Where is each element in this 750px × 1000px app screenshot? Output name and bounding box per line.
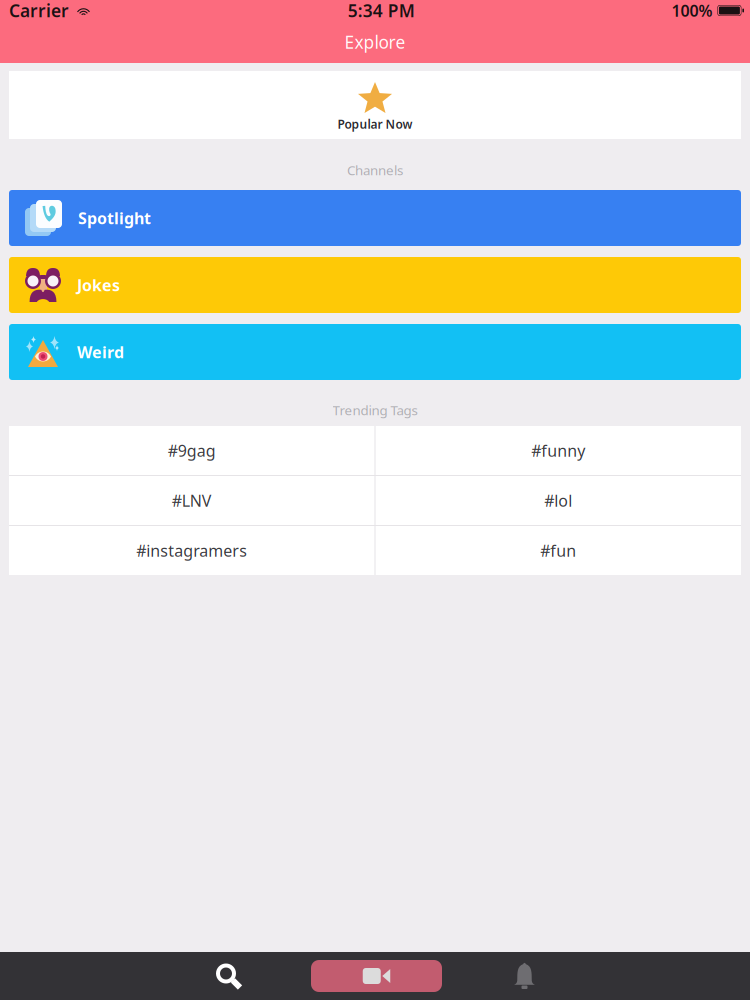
button[interactable]: Weird xyxy=(9,324,741,380)
button[interactable]: #fun xyxy=(375,526,741,575)
staticText: #fun xyxy=(540,540,576,561)
staticText: #LNV xyxy=(172,490,212,511)
staticText: Jokes xyxy=(77,274,120,296)
staticText: #lol xyxy=(544,490,572,511)
staticText: 5:34 PM xyxy=(348,0,415,22)
staticText: Weird xyxy=(77,341,124,363)
button[interactable]: Jokes xyxy=(9,257,741,313)
button[interactable]: #instagramers xyxy=(9,526,374,575)
button[interactable]: Popular Now xyxy=(9,71,741,139)
staticText: #instagramers xyxy=(136,540,247,561)
staticText: Carrier xyxy=(9,0,69,22)
staticText: 100% xyxy=(671,0,712,21)
button[interactable]: Search xyxy=(146,952,311,1000)
staticText: #9gag xyxy=(168,440,216,461)
button[interactable]: #lol xyxy=(375,476,741,525)
button[interactable]: Spotlight xyxy=(9,190,741,246)
staticText: #funny xyxy=(531,440,585,461)
button[interactable]: #LNV xyxy=(9,476,374,525)
staticText: Popular Now xyxy=(337,116,412,132)
staticText: Trending Tags xyxy=(332,401,417,419)
button[interactable]: #funny xyxy=(375,426,741,475)
staticText: Spotlight xyxy=(78,207,151,229)
button[interactable]: Record video xyxy=(311,960,442,992)
staticText: Explore xyxy=(344,30,405,53)
button[interactable]: #9gag xyxy=(9,426,374,475)
button[interactable]: Notifications xyxy=(442,952,607,1000)
staticText: Channels xyxy=(347,161,403,179)
